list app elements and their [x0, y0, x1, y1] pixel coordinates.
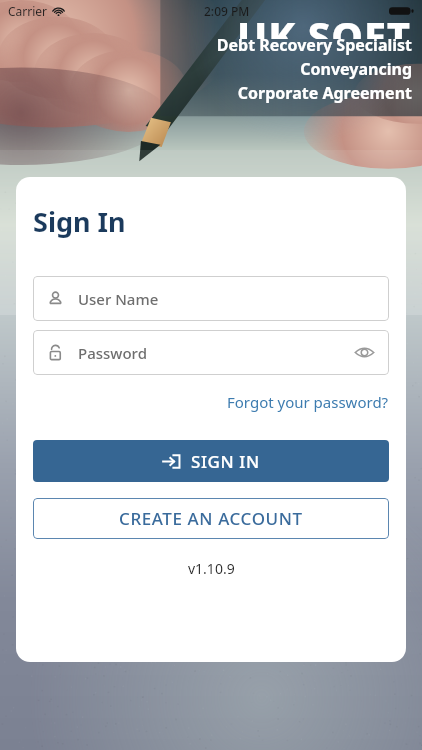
button[interactable]: SIGN IN	[33, 440, 389, 482]
staticText: v1.10.9	[188, 559, 235, 578]
button[interactable]: Show password	[354, 342, 375, 363]
staticText: CREATE AN ACCOUNT	[119, 507, 303, 530]
button[interactable]: User Name	[33, 276, 389, 321]
staticText: UK SOFT	[237, 8, 412, 39]
staticText: SIGN IN	[191, 450, 260, 473]
button[interactable]: Password	[33, 330, 389, 375]
staticText: User Name	[78, 289, 159, 309]
staticText: Debt Recovery Specialist	[216, 34, 412, 56]
staticText: Carrier	[8, 3, 48, 19]
button[interactable]: Forgot your password?	[227, 390, 389, 414]
staticText: 2:09 PM	[204, 3, 250, 19]
staticText: Password	[78, 343, 147, 363]
button[interactable]: CREATE AN ACCOUNT	[33, 498, 389, 539]
staticText: Conveyancing	[300, 58, 412, 80]
staticText: Corporate Agreement	[237, 82, 412, 104]
staticText: Sign In	[33, 203, 126, 240]
